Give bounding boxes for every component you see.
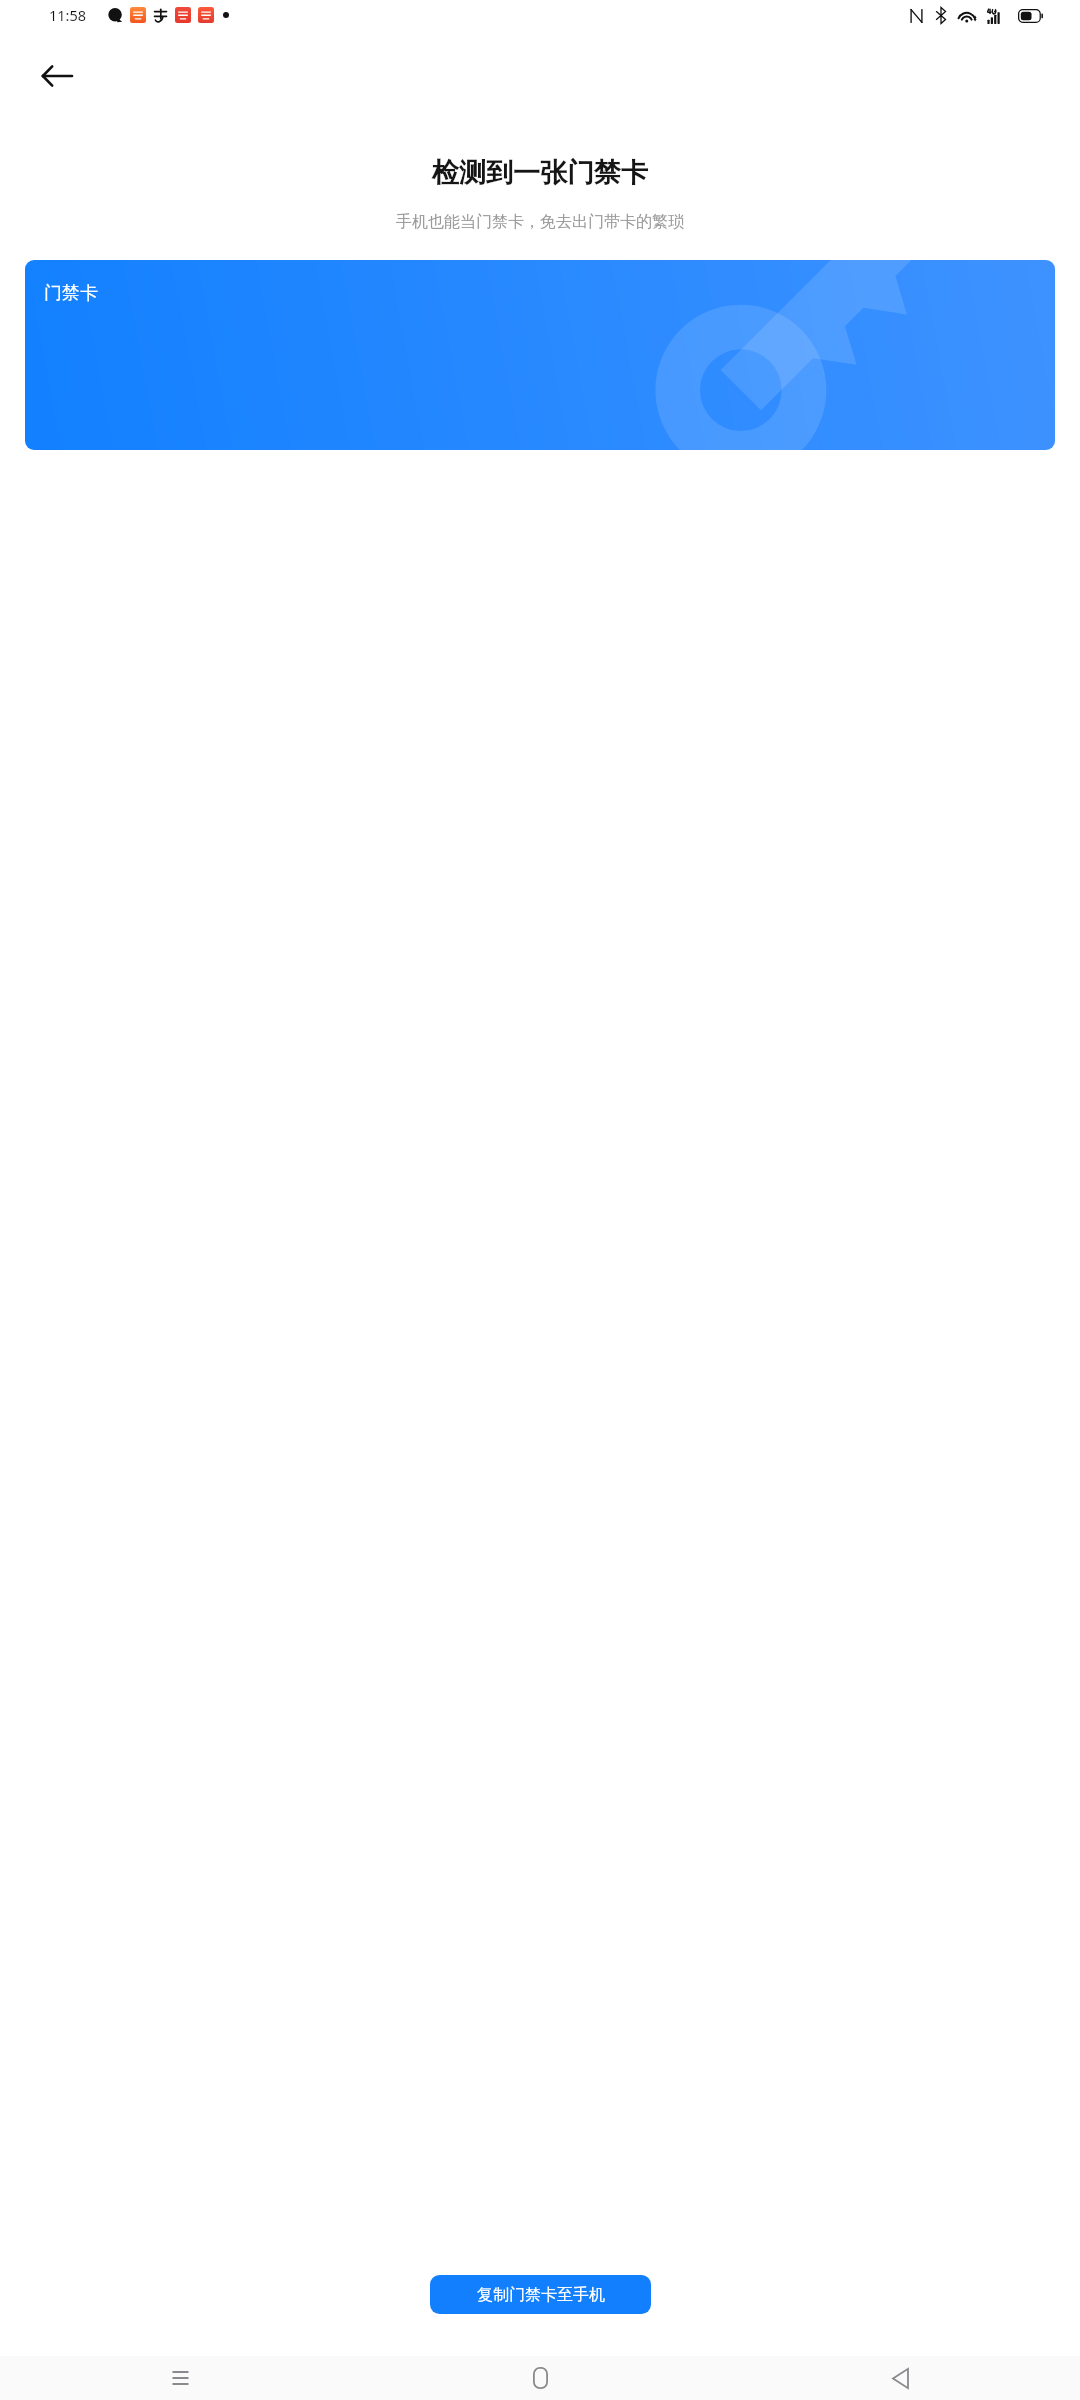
button[interactable]: 门禁卡 bbox=[25, 260, 1055, 450]
button[interactable]: 复制门禁卡至手机 bbox=[430, 2275, 651, 2314]
button[interactable]: Back bbox=[27, 46, 87, 106]
staticText: 检测到一张门禁卡 bbox=[432, 156, 648, 190]
staticText: 复制门禁卡至手机 bbox=[477, 2285, 605, 2305]
staticText: 手机也能当门禁卡，免去出门带卡的繁琐 bbox=[396, 212, 684, 232]
button[interactable]: Home bbox=[360, 2356, 720, 2400]
staticText: 11:58 bbox=[49, 5, 87, 25]
staticText: 门禁卡 bbox=[44, 282, 98, 305]
button[interactable]: Back bbox=[720, 2356, 1080, 2400]
button[interactable]: Recent apps bbox=[0, 2356, 360, 2400]
